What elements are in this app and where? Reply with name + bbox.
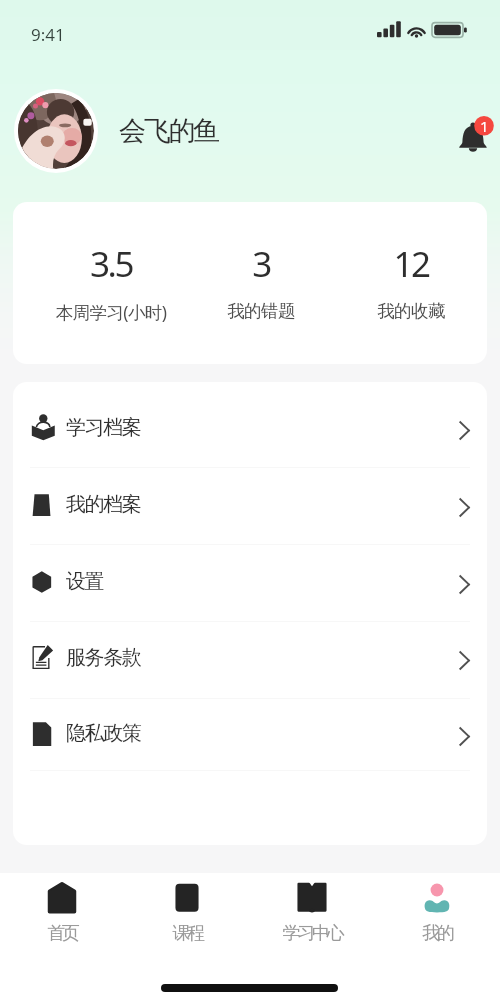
button[interactable]: 12 [336,202,486,364]
staticText: 会飞的鱼 [119,114,218,148]
button[interactable]: 设置 [13,543,487,620]
staticText: 学习档案 [66,415,141,440]
staticText: 我的收藏 [336,300,486,322]
staticText: 课程 [172,922,202,945]
staticText: 设置 [66,569,104,594]
button[interactable]: 隐私政策 [13,695,487,772]
staticText: 我的档案 [66,492,141,517]
button[interactable]: 3 [186,202,336,364]
staticText: 隐私政策 [66,721,141,746]
button[interactable]: 服务条款 [13,619,487,696]
staticText: 我的 [422,922,452,945]
button[interactable]: 课程 [147,878,227,946]
staticText: 1 [480,116,489,136]
button[interactable]: 学习档案 [13,389,487,466]
staticText: 首页 [47,922,77,945]
staticText: 9:41 [31,23,65,46]
staticText: 服务条款 [66,645,141,670]
button[interactable]: 首页 [22,878,102,946]
button[interactable]: Profile photo [14,89,98,173]
button[interactable]: Notifications [450,115,496,161]
staticText: 我的错题 [186,300,336,322]
button[interactable]: 我的档案 [13,466,487,543]
staticText: 3.5 [36,240,186,288]
staticText: 12 [336,240,486,288]
staticText: 3 [186,240,336,288]
button[interactable]: 我的 [397,878,477,946]
button[interactable]: 学习中心 [272,878,352,946]
staticText: 学习中心 [282,922,342,945]
button[interactable]: 3.5 [36,202,186,364]
staticText: 本周学习(小时) [36,300,186,324]
